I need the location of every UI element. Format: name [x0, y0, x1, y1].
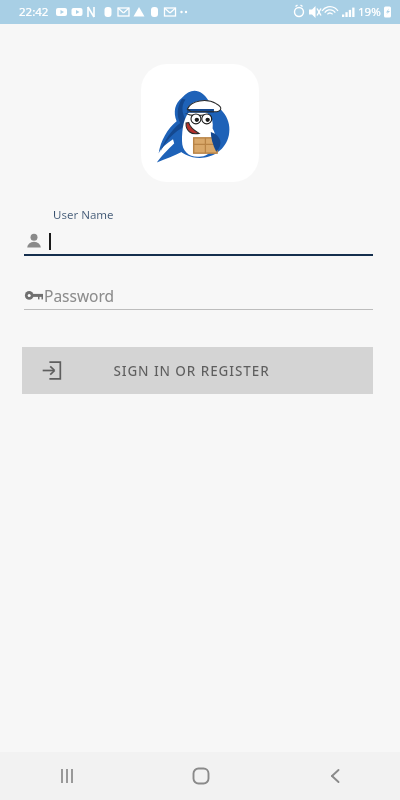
staticText: User Name — [53, 207, 114, 223]
staticText: 22:42 — [19, 4, 49, 20]
staticText: Password — [44, 285, 115, 306]
staticText: SIGN IN OR REGISTER — [113, 362, 270, 380]
button[interactable]: Password — [24, 283, 373, 310]
button[interactable]: Home — [134, 752, 267, 800]
button[interactable]: SIGN IN OR REGISTER — [22, 347, 373, 394]
button[interactable]: User Name — [24, 207, 373, 256]
button[interactable]: Recent apps — [0, 752, 134, 800]
staticText: 19% — [358, 4, 381, 20]
button[interactable]: Back — [267, 752, 400, 800]
